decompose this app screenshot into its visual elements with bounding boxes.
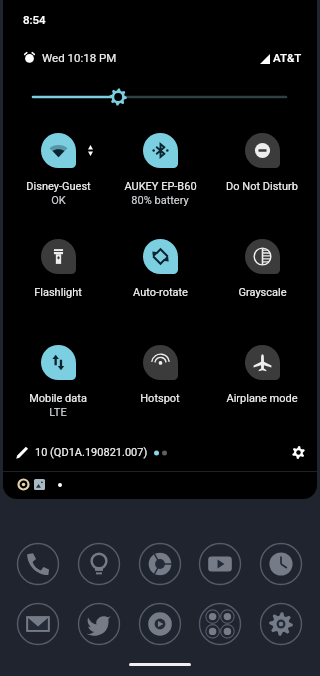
staticText: LTE [49, 406, 67, 419]
button[interactable]: Twitter [77, 602, 121, 646]
button[interactable]: Gmail [16, 602, 60, 646]
staticText: Auto-rotate [133, 286, 188, 299]
staticText: Do Not Disturb [226, 180, 298, 193]
staticText: Mobile data [29, 392, 87, 405]
button[interactable]: AUKEY EP-B60 [109, 133, 211, 207]
staticText: AUKEY EP-B60 [124, 180, 197, 193]
button[interactable]: Expand [7, 133, 109, 207]
staticText: Disney-Guest [26, 180, 91, 193]
other: Expand [88, 145, 93, 156]
staticText: 10 (QD1A.190821.007) [35, 446, 148, 459]
staticText: 8:54 [23, 13, 46, 26]
button[interactable]: Mobile data [7, 345, 109, 419]
button[interactable]: YouTube [198, 542, 242, 586]
button[interactable]: Bulb [77, 542, 121, 586]
staticText: Wed 10:18 PM [42, 51, 117, 64]
button[interactable]: Hotspot [109, 345, 211, 405]
button[interactable]: Airplane mode [211, 345, 313, 405]
button[interactable]: Play [138, 602, 182, 646]
staticText: Grayscale [238, 286, 287, 299]
staticText: Flashlight [34, 286, 82, 299]
staticText: OK [51, 194, 66, 207]
staticText: AT&T [273, 51, 302, 64]
staticText: 80% battery [131, 194, 189, 207]
button[interactable]: Flashlight [7, 239, 109, 299]
button[interactable]: Folder [198, 602, 242, 646]
button[interactable]: 10 (QD1A.190821.007) [16, 440, 306, 464]
button[interactable]: Grayscale [211, 239, 313, 299]
button[interactable]: Auto-rotate [109, 239, 211, 299]
staticText: Hotspot [140, 392, 180, 405]
button[interactable]: Do Not Disturb [211, 133, 313, 193]
button[interactable]: Clock [259, 542, 303, 586]
button[interactable]: Settings [259, 602, 303, 646]
button[interactable]: Settings [287, 441, 309, 463]
staticText: Airplane mode [226, 392, 298, 405]
button[interactable]: Chrome [138, 542, 182, 586]
button[interactable]: Phone [16, 542, 60, 586]
